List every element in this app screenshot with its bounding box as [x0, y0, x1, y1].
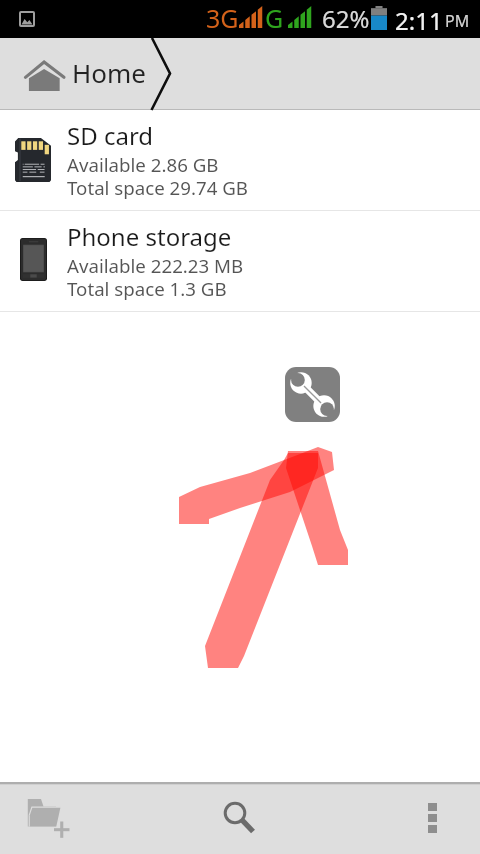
button[interactable]: Search [195, 790, 281, 850]
staticText: PM [445, 10, 470, 32]
staticText: Available 2.86 GB [67, 152, 219, 177]
staticText: Phone storage [67, 220, 232, 253]
staticText: 3G [206, 1, 239, 35]
staticText: 2:11 [395, 4, 443, 37]
button[interactable]: New folder [6, 790, 92, 850]
button[interactable]: More options [389, 790, 475, 850]
staticText: Home [72, 55, 146, 90]
staticText: G [265, 1, 284, 35]
staticText: SD card [67, 119, 154, 152]
staticText: 62% [322, 2, 370, 35]
staticText: Total space 29.74 GB [67, 175, 248, 200]
button[interactable]: SD card [0, 110, 480, 210]
staticText: Available 222.23 MB [67, 253, 244, 278]
staticText: Total space 1.3 GB [67, 276, 227, 301]
button[interactable]: Phone storage [0, 211, 480, 311]
button[interactable]: Home [0, 38, 480, 110]
